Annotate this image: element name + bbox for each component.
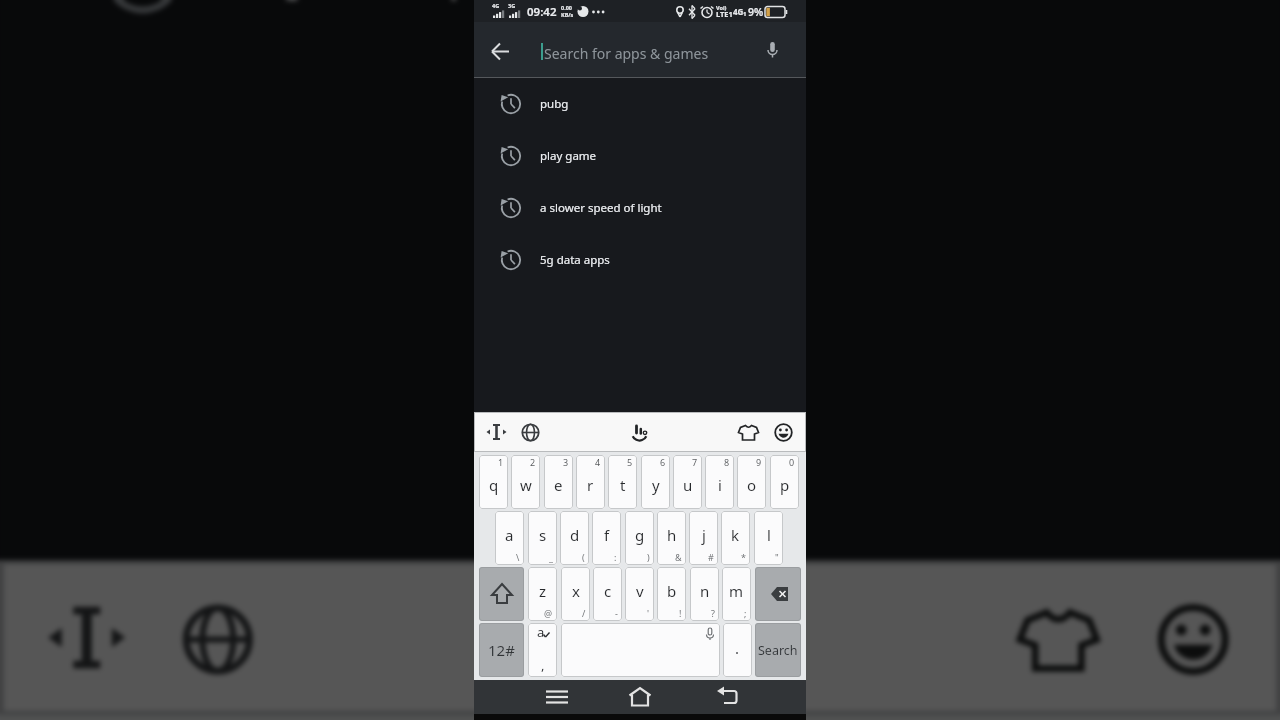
staticText: LTE1	[716, 9, 733, 19]
button[interactable]: j	[689, 511, 718, 565]
staticText: pubg	[540, 96, 569, 112]
button[interactable]	[516, 418, 545, 447]
staticText: Voi)	[716, 4, 727, 11]
button[interactable]: v	[625, 567, 654, 621]
staticText: l	[767, 525, 771, 545]
staticText: d	[570, 525, 580, 545]
button[interactable]	[479, 567, 524, 621]
staticText: .	[735, 638, 740, 658]
staticText: 5	[627, 456, 633, 468]
button[interactable]	[710, 680, 744, 714]
button[interactable]: 4	[576, 455, 605, 509]
staticText: @	[544, 607, 553, 619]
button[interactable]: 5g data apps	[474, 234, 806, 286]
button[interactable]: play game	[474, 130, 806, 182]
button[interactable]	[623, 680, 657, 714]
button[interactable]	[561, 623, 720, 677]
button[interactable]: b	[657, 567, 686, 621]
button[interactable]	[734, 418, 763, 447]
staticText: 3	[563, 456, 569, 468]
staticText: 1	[498, 456, 504, 468]
staticText: b	[667, 581, 677, 601]
button[interactable]: h	[657, 511, 686, 565]
staticText: w	[520, 475, 532, 495]
staticText: Search	[758, 642, 798, 659]
button[interactable]	[162, 584, 274, 695]
button[interactable]: a slower speed of light	[474, 182, 806, 234]
button[interactable]	[482, 418, 511, 447]
button[interactable]: k	[721, 511, 750, 565]
staticText: z	[539, 581, 547, 601]
button[interactable]	[758, 30, 801, 73]
button[interactable]	[769, 418, 798, 447]
staticText: 0	[789, 456, 795, 468]
button[interactable]: 1	[479, 455, 508, 509]
button[interactable]	[479, 30, 522, 73]
button[interactable]	[755, 567, 801, 621]
staticText: 4	[595, 456, 601, 468]
staticText: ,	[541, 656, 545, 674]
staticText: "	[775, 551, 779, 563]
staticText: KB/s	[561, 11, 574, 18]
button[interactable]: d	[560, 511, 589, 565]
staticText: 0.00	[561, 4, 572, 11]
button[interactable]: 3	[544, 455, 573, 509]
staticText: e	[554, 475, 563, 495]
button[interactable]	[1137, 584, 1249, 695]
staticText: 4G	[492, 2, 500, 9]
button[interactable]: a	[495, 511, 524, 565]
button[interactable]: z	[528, 567, 557, 621]
staticText: a slower speed of light	[540, 200, 662, 216]
button[interactable]: l	[754, 511, 783, 565]
staticText: -	[615, 607, 618, 619]
button[interactable]: c	[593, 567, 622, 621]
button[interactable]	[540, 680, 574, 714]
button[interactable]: Search	[755, 623, 801, 677]
button[interactable]: 9	[737, 455, 766, 509]
button[interactable]: .	[723, 623, 752, 677]
staticText: /	[582, 607, 586, 619]
staticText: 09:42	[527, 4, 557, 20]
button[interactable]	[625, 418, 655, 448]
staticText: f	[604, 525, 610, 545]
button[interactable]: n	[690, 567, 719, 621]
staticText: 5g data apps	[254, 0, 524, 5]
staticText: ?	[711, 607, 715, 619]
button[interactable]: f	[592, 511, 621, 565]
staticText: 2	[530, 456, 536, 468]
button[interactable]: 7	[673, 455, 702, 509]
button[interactable]: 12#	[479, 623, 524, 677]
staticText: !	[679, 607, 682, 619]
button[interactable]	[526, 24, 754, 75]
staticText: 4G₁	[733, 6, 747, 17]
staticText: 9%	[748, 5, 764, 19]
staticText: a	[505, 525, 514, 545]
button[interactable]	[582, 584, 698, 699]
staticText: n	[700, 581, 710, 601]
staticText: '	[647, 607, 650, 619]
button[interactable]	[31, 584, 143, 695]
button[interactable]: 8	[705, 455, 734, 509]
button[interactable]: x	[561, 567, 590, 621]
staticText: 3G	[508, 2, 516, 9]
staticText: r	[587, 475, 594, 495]
staticText: o	[747, 475, 757, 495]
button[interactable]: g	[625, 511, 654, 565]
staticText: x	[572, 581, 580, 601]
staticText: Search for apps & games	[544, 44, 709, 63]
button[interactable]: 5	[608, 455, 637, 509]
button[interactable]: s	[528, 511, 557, 565]
button[interactable]: m	[722, 567, 751, 621]
button[interactable]: 0	[770, 455, 799, 509]
staticText: 9	[756, 456, 762, 468]
button[interactable]: pubg	[474, 78, 806, 130]
staticText: 6	[660, 456, 666, 468]
button[interactable]	[1002, 584, 1114, 695]
staticText: \	[516, 551, 520, 563]
button[interactable]: 6	[641, 455, 670, 509]
button[interactable]: 2	[511, 455, 540, 509]
button[interactable]: a	[528, 623, 557, 677]
button[interactable]: 5g data apps	[0, 0, 1280, 75]
staticText: m	[729, 581, 744, 601]
staticText: (	[582, 551, 585, 563]
